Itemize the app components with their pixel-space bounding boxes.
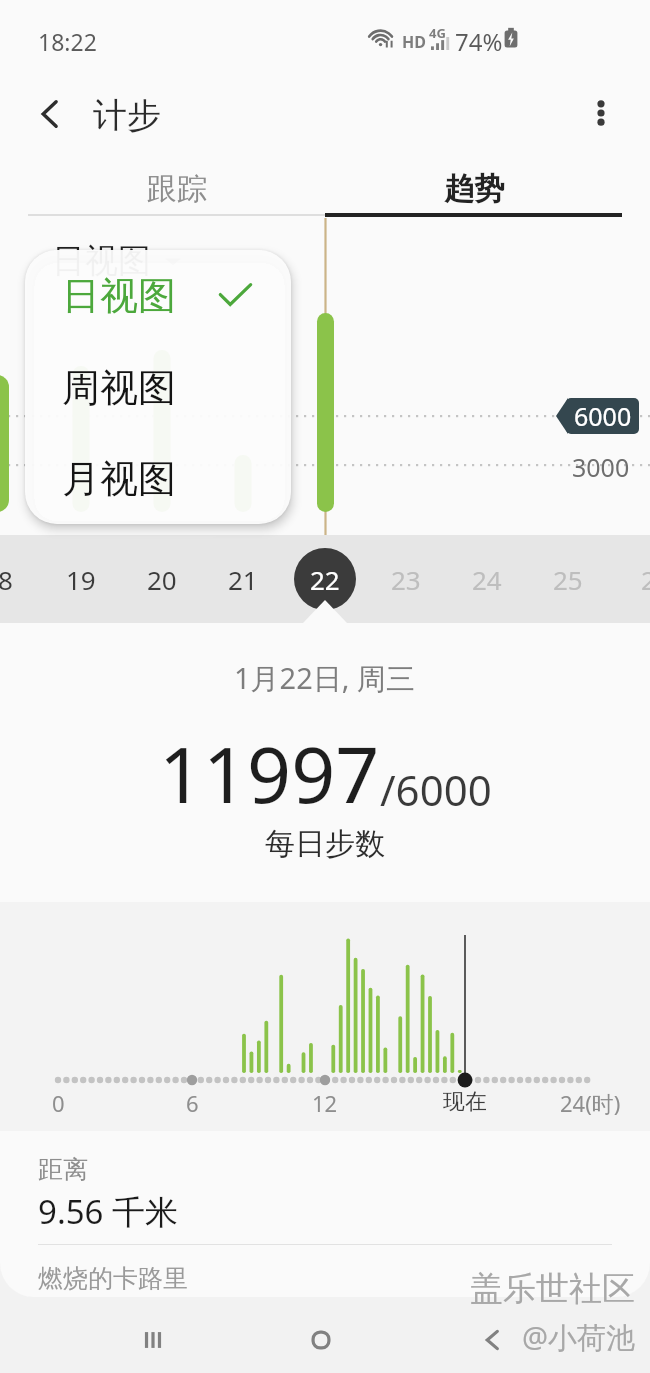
button[interactable]: 20 (122, 535, 202, 623)
staticText: /6000 (380, 761, 492, 818)
staticText: 22 (310, 562, 340, 597)
staticText: 74% (455, 25, 503, 58)
staticText: 6 (186, 1088, 199, 1118)
button[interactable]: 周视图 (25, 342, 291, 433)
staticText: 9.56 千米 (38, 1189, 179, 1234)
staticText: 燃烧的卡路里 (38, 1263, 188, 1294)
button[interactable]: 跟踪 (28, 158, 325, 220)
button[interactable]: 24 (447, 535, 527, 623)
button[interactable]: Back (459, 1306, 527, 1373)
staticText: 周视图 (62, 364, 176, 412)
staticText: 趋势 (444, 170, 504, 208)
button[interactable]: 月视图 (25, 433, 291, 524)
button[interactable]: 计步 (93, 94, 161, 137)
staticText: 距离 (38, 1154, 88, 1185)
staticText: 24(时) (560, 1088, 621, 1118)
staticText: HD (402, 31, 426, 53)
button[interactable]: 21 (203, 535, 283, 623)
staticText: 20 (147, 562, 177, 597)
staticText: 8 (0, 562, 13, 597)
button[interactable]: 距离 (0, 1131, 650, 1244)
button[interactable]: Recents (119, 1306, 187, 1373)
staticText: 6000 (574, 399, 632, 433)
button[interactable]: 23 (366, 535, 446, 623)
staticText: 现在 (443, 1088, 487, 1116)
button[interactable]: 19 (41, 535, 121, 623)
staticText: 0 (52, 1088, 65, 1118)
button[interactable]: 8 (0, 535, 45, 623)
button[interactable]: 日视图 (25, 250, 291, 342)
staticText: 1月22日, 周三 (234, 658, 416, 698)
staticText: 月视图 (62, 455, 176, 503)
button[interactable]: 日视图 (52, 240, 181, 282)
button[interactable]: 趋势 (325, 158, 622, 220)
staticText: 19 (66, 562, 96, 597)
staticText: 18:22 (38, 26, 97, 57)
staticText: 12 (312, 1088, 338, 1118)
staticText: 24 (472, 562, 502, 597)
staticText: 2 (641, 562, 650, 597)
button[interactable]: More options (578, 90, 624, 136)
staticText: 日视图 (52, 240, 151, 282)
staticText: 盖乐世社区 (470, 1268, 635, 1310)
staticText: 日视图 (62, 272, 176, 320)
staticText: 11997 (159, 721, 380, 826)
button[interactable]: Back (27, 91, 73, 137)
button[interactable]: 燃烧的卡路里 (0, 1245, 650, 1297)
staticText: 3000 (572, 450, 630, 484)
button[interactable]: Home (287, 1306, 355, 1373)
staticText: 25 (553, 562, 583, 597)
staticText: 每日步数 (265, 825, 385, 863)
button[interactable]: 25 (528, 535, 608, 623)
staticText: 21 (228, 562, 258, 597)
staticText: 4G (429, 24, 446, 42)
staticText: 跟踪 (147, 170, 207, 208)
staticText: 23 (391, 562, 421, 597)
button[interactable]: 22 (285, 535, 365, 623)
staticText: @小荷池 (522, 1317, 636, 1357)
button[interactable]: 2 (608, 535, 650, 623)
